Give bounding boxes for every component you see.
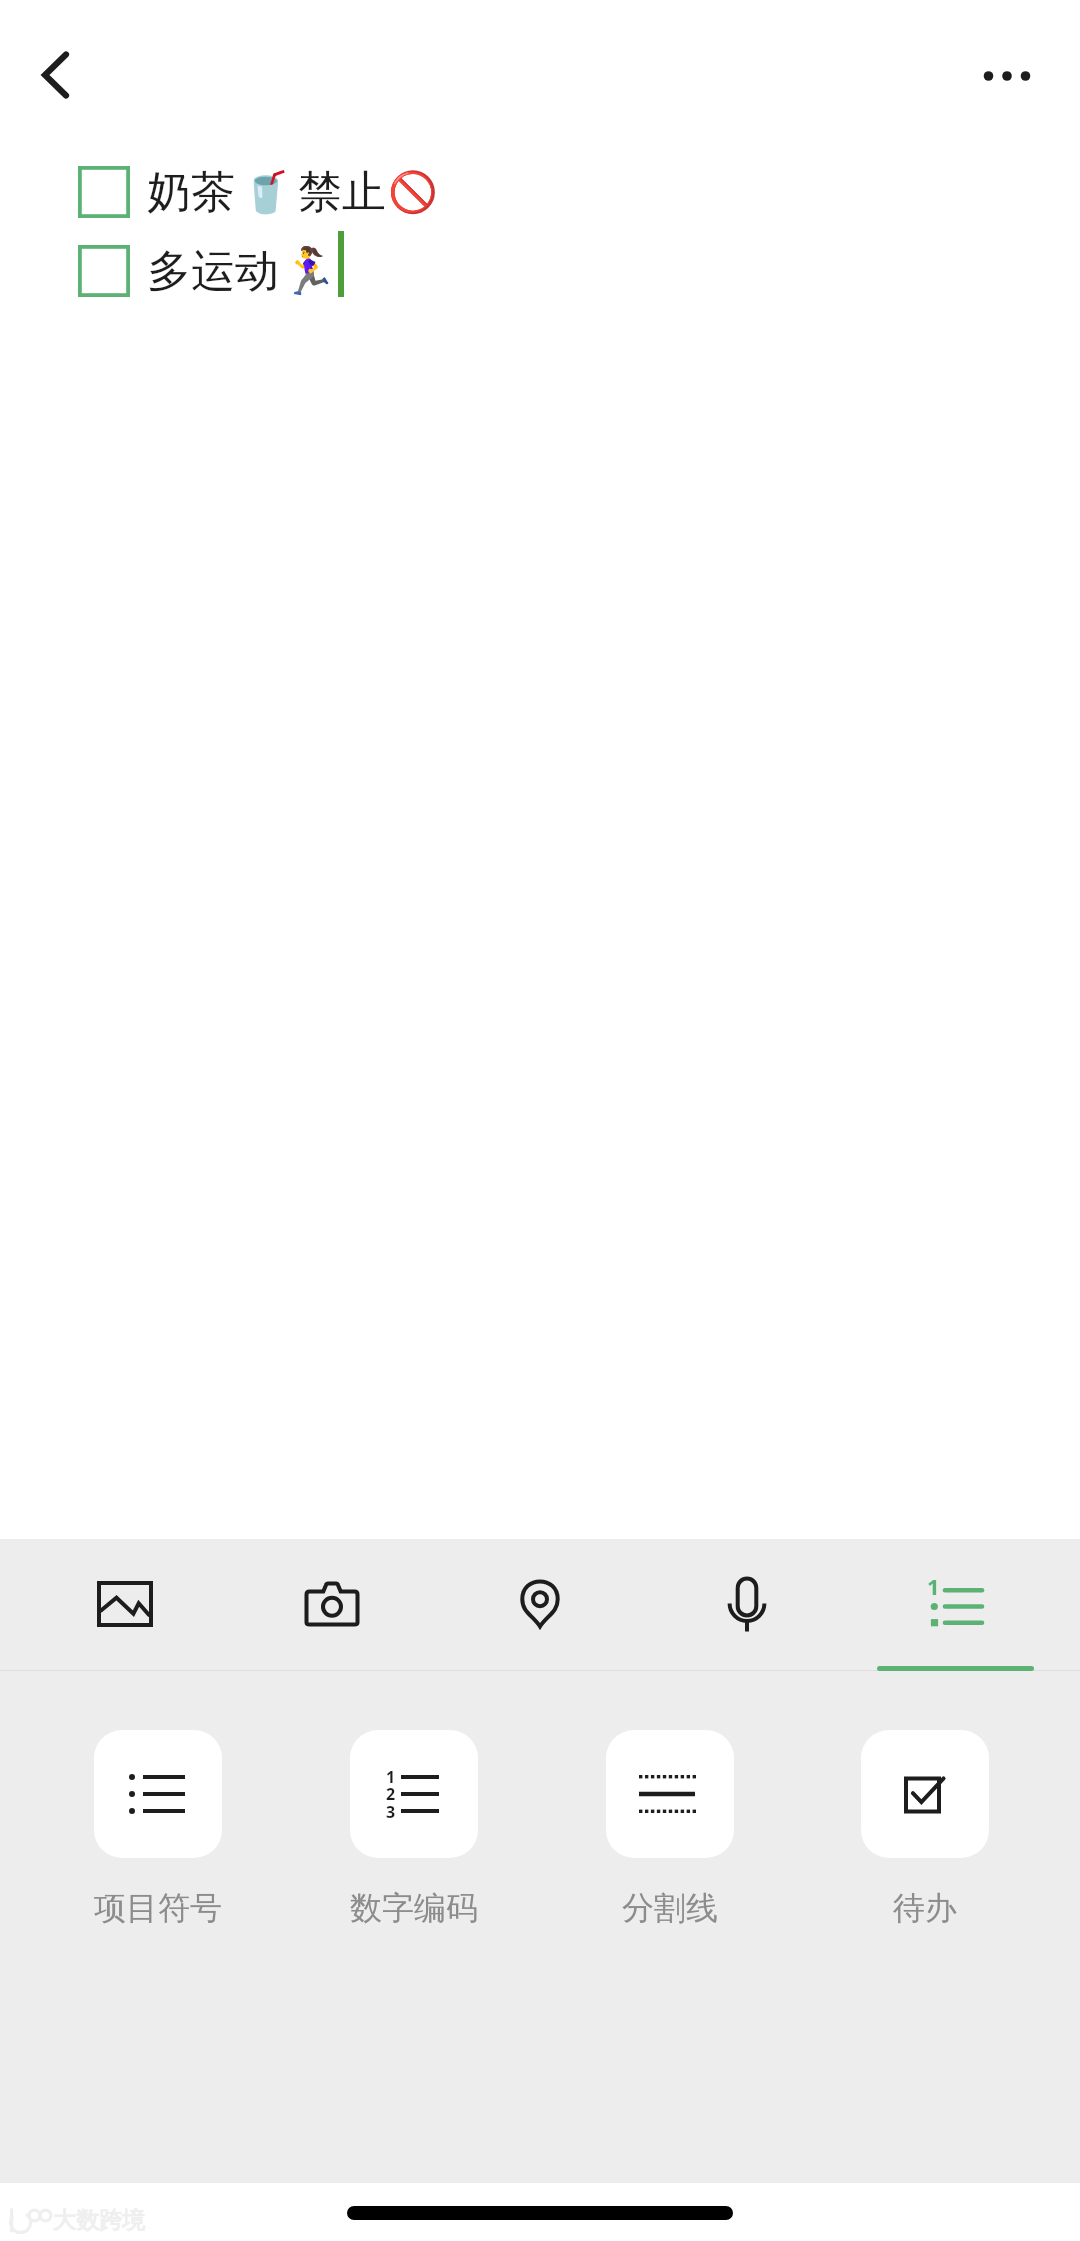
staticText: 🚫 [388, 169, 438, 216]
staticText: 数字编码 [350, 1888, 478, 1928]
staticText: 多运动 [147, 244, 279, 299]
button[interactable]: Checkbox [78, 245, 130, 297]
staticText: 2 [386, 1783, 396, 1805]
staticText: 奶茶 [147, 165, 235, 220]
button[interactable]: Back [8, 27, 104, 123]
staticText: 大数跨境 [53, 2206, 145, 2235]
button[interactable]: Image [55, 1539, 195, 1669]
button[interactable]: More options [959, 28, 1055, 124]
button[interactable]: Voice [677, 1539, 817, 1669]
staticText: 1 [386, 1766, 396, 1788]
staticText: 🏃‍♀️ [280, 244, 338, 298]
staticText: 项目符号 [94, 1888, 222, 1928]
staticText: 3 [386, 1801, 396, 1823]
button[interactable]: 项目符号 [31, 1730, 285, 1928]
button[interactable]: Location [470, 1539, 610, 1669]
button[interactable]: 分割线 [543, 1730, 797, 1928]
button[interactable]: 1 [287, 1730, 541, 1928]
button[interactable]: Camera [262, 1539, 402, 1669]
staticText: 1 [927, 1571, 940, 1601]
staticText: 🥤 [241, 169, 291, 216]
button[interactable]: 待办 [798, 1730, 1052, 1928]
button[interactable]: Checkbox [78, 166, 130, 218]
staticText: 禁止 [298, 165, 386, 220]
staticText: 待办 [893, 1888, 957, 1928]
button[interactable]: Lists [885, 1539, 1025, 1669]
staticText: 分割线 [622, 1888, 718, 1928]
